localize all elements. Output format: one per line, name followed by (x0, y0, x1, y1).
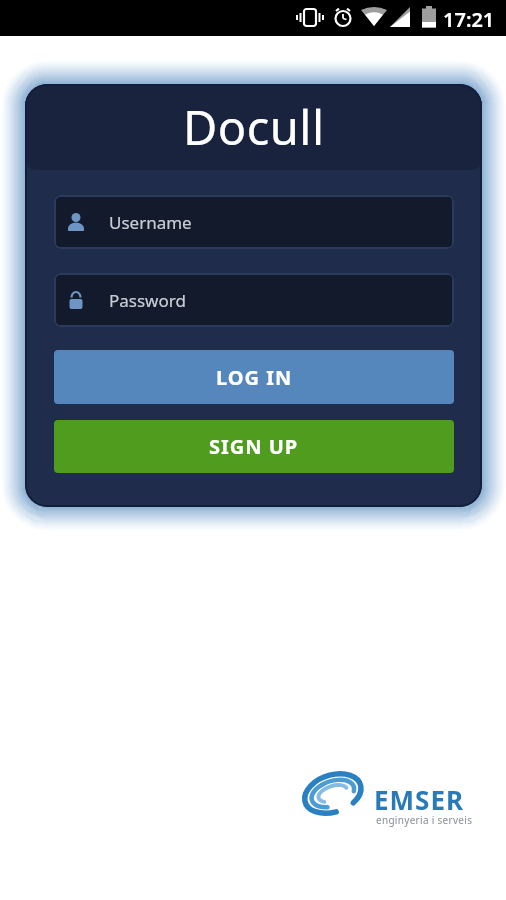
button[interactable]: Password (54, 273, 454, 327)
staticText: LOG IN (216, 364, 293, 391)
staticText: Username (109, 211, 192, 234)
staticText: enginyeria i serveis (376, 813, 473, 827)
staticText: EMSER (374, 782, 465, 817)
button[interactable]: LOG IN (54, 350, 454, 404)
button[interactable]: SIGN UP (54, 420, 454, 473)
staticText: Docull (183, 95, 325, 159)
staticText: SIGN UP (209, 433, 299, 460)
staticText: 17:21 (443, 6, 495, 33)
staticText: Password (109, 289, 186, 312)
button[interactable]: Username (54, 195, 454, 249)
